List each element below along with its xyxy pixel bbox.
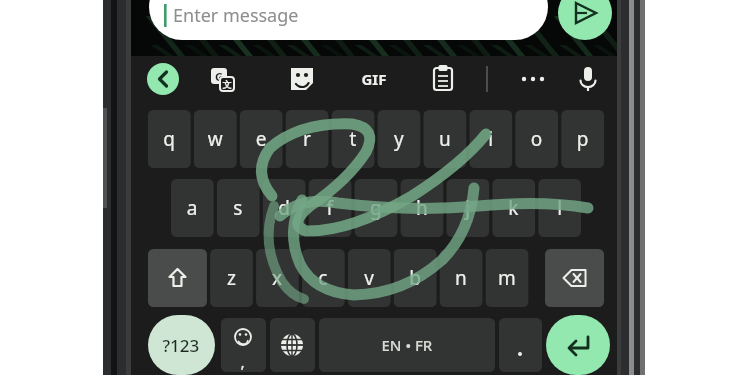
button[interactable]: Gboard gesture typing demo bbox=[0, 0, 750, 375]
